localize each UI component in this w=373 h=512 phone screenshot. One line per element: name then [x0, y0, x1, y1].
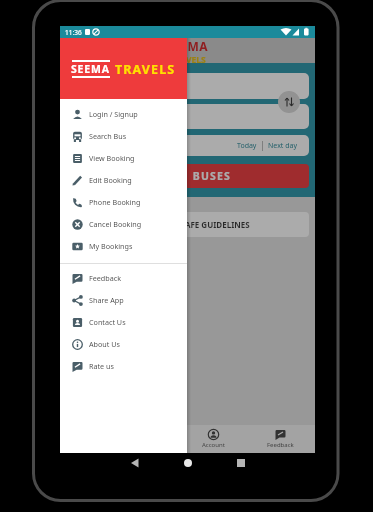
- staticText: Feedback: [267, 441, 294, 449]
- staticText: Cancel Booking: [89, 219, 142, 229]
- button[interactable]: SEARCH BUSES: [64, 164, 309, 188]
- staticText: COVID SAFE GUIDELINES: [153, 219, 250, 230]
- staticText: TRAVELS: [170, 54, 206, 63]
- staticText: Account: [202, 441, 225, 449]
- button[interactable]: Share App: [60, 289, 187, 311]
- staticText: Rate us: [89, 361, 114, 371]
- staticText: Edit Booking: [89, 175, 132, 185]
- button[interactable]: [64, 104, 309, 129]
- button[interactable]: Today: [232, 141, 262, 151]
- staticText: TRAVELS: [115, 61, 176, 78]
- button[interactable]: COVID SAFE GUIDELINES: [64, 212, 309, 237]
- staticText: Contact Us: [89, 317, 126, 327]
- button[interactable]: Account: [183, 425, 243, 453]
- staticText: Login / Signup: [89, 109, 138, 119]
- button[interactable]: Search Bus: [60, 125, 187, 147]
- button[interactable]: About Us: [60, 333, 187, 355]
- button[interactable]: Cancel Booking: [60, 213, 187, 235]
- button[interactable]: Phone Booking: [60, 191, 187, 213]
- button[interactable]: Feedback: [60, 267, 187, 289]
- button[interactable]: View Booking: [60, 147, 187, 169]
- staticText: Share App: [89, 295, 124, 305]
- button[interactable]: Contact Us: [60, 311, 187, 333]
- button[interactable]: Home: [49, 425, 109, 453]
- staticText: View Booking: [89, 153, 135, 163]
- button[interactable]: Edit Booking: [60, 169, 187, 191]
- staticText: SEEMA: [71, 62, 110, 76]
- staticText: Phone Booking: [89, 197, 141, 207]
- button[interactable]: [64, 73, 309, 99]
- button[interactable]: [278, 91, 300, 113]
- staticText: SEARCH BUSES: [141, 169, 232, 183]
- staticText: My Bookings: [89, 241, 133, 251]
- staticText: 11:36: [65, 28, 82, 37]
- staticText: Search Bus: [89, 131, 127, 141]
- button[interactable]: My Bookings: [60, 235, 187, 257]
- button[interactable]: Next day: [263, 141, 309, 151]
- button[interactable]: Feedback: [250, 425, 310, 453]
- staticText: About Us: [89, 339, 120, 349]
- button[interactable]: Login / Signup: [60, 103, 187, 125]
- button[interactable]: Rate us: [60, 355, 187, 377]
- staticText: SEEMA: [166, 38, 209, 54]
- staticText: Feedback: [89, 273, 121, 283]
